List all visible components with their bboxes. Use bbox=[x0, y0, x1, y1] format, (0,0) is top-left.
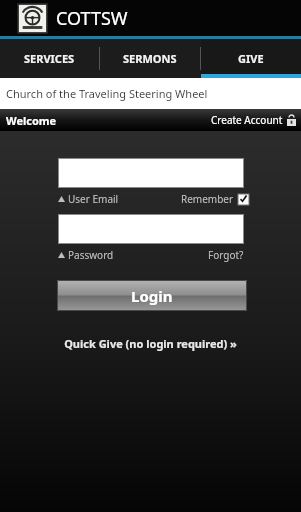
button[interactable]: GIVE bbox=[201, 39, 301, 78]
staticText: SERMONS bbox=[123, 51, 177, 66]
staticText: Welcome bbox=[6, 113, 57, 128]
button[interactable]: COTTSW logo bbox=[0, 0, 301, 36]
staticText: GIVE bbox=[238, 51, 264, 66]
staticText: Church of the Traveling Steering Wheel bbox=[6, 86, 208, 101]
button[interactable] bbox=[58, 158, 244, 188]
staticText: Quick Give (no login required) » bbox=[64, 336, 237, 351]
button[interactable]: Login bbox=[57, 280, 247, 311]
other: Create Account bbox=[287, 115, 296, 126]
staticText: Password bbox=[68, 248, 114, 262]
staticText: Remember bbox=[181, 192, 234, 206]
staticText: Create Account bbox=[211, 113, 283, 127]
staticText: User Email bbox=[68, 192, 119, 206]
button[interactable]: SERMONS bbox=[100, 39, 200, 78]
button[interactable]: Remember bbox=[181, 192, 249, 206]
staticText: Forgot? bbox=[208, 248, 244, 262]
staticText: SERVICES bbox=[24, 51, 75, 66]
staticText: COTTSW bbox=[56, 6, 128, 31]
button[interactable]: Forgot? bbox=[208, 248, 244, 262]
button[interactable] bbox=[58, 214, 244, 244]
staticText: Login bbox=[131, 286, 173, 306]
button[interactable]: Quick Give (no login required) » bbox=[0, 336, 301, 351]
button[interactable]: Create Account bbox=[206, 113, 301, 127]
button[interactable]: Church of the Traveling Steering Wheel bbox=[0, 78, 301, 109]
button[interactable]: SERVICES bbox=[0, 39, 99, 78]
other: COTTSW logo bbox=[18, 4, 47, 33]
